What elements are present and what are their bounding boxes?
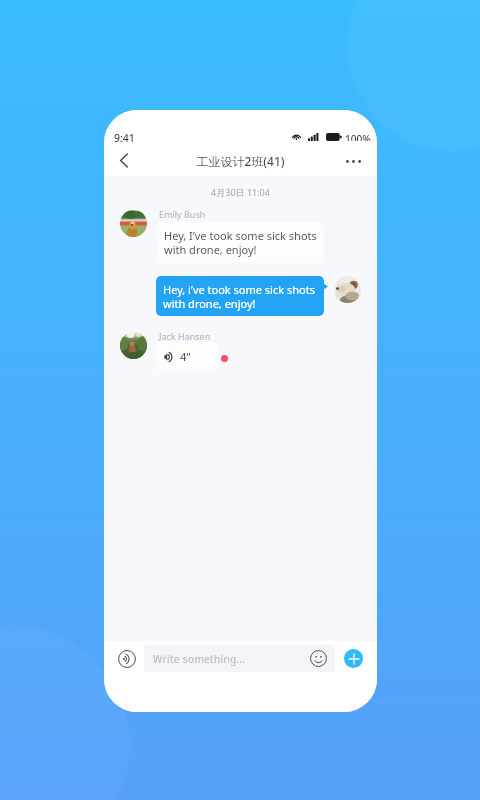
staticText: Hey, i’ve took some sick shots with dron… [163,282,315,311]
button[interactable]: Hey, i’ve took some sick shots with dron… [156,276,324,316]
button[interactable]: More options [338,146,368,176]
staticText: 4" [180,349,191,364]
staticText: Jack Hansen [159,330,211,342]
staticText: 9:41 [114,131,135,145]
staticText: Write something... [153,652,246,666]
button[interactable]: Add attachment [344,649,363,668]
button[interactable]: Emoji [309,649,328,668]
staticText: Hey, I’ve took some sick shots with dron… [164,228,317,257]
button[interactable]: Hey, I’ve took some sick shots with dron… [157,222,324,263]
staticText: Emily Bush [159,208,206,220]
staticText: 100% [345,132,371,141]
button[interactable]: Play voice message, 4 seconds [156,342,219,371]
button[interactable]: Write something... [144,645,335,672]
button[interactable]: Voice message [117,649,137,669]
staticText: 4月30日 11:04 [211,186,270,198]
staticText: 工业设计2班(41) [196,153,285,169]
button[interactable]: Back [109,145,139,175]
